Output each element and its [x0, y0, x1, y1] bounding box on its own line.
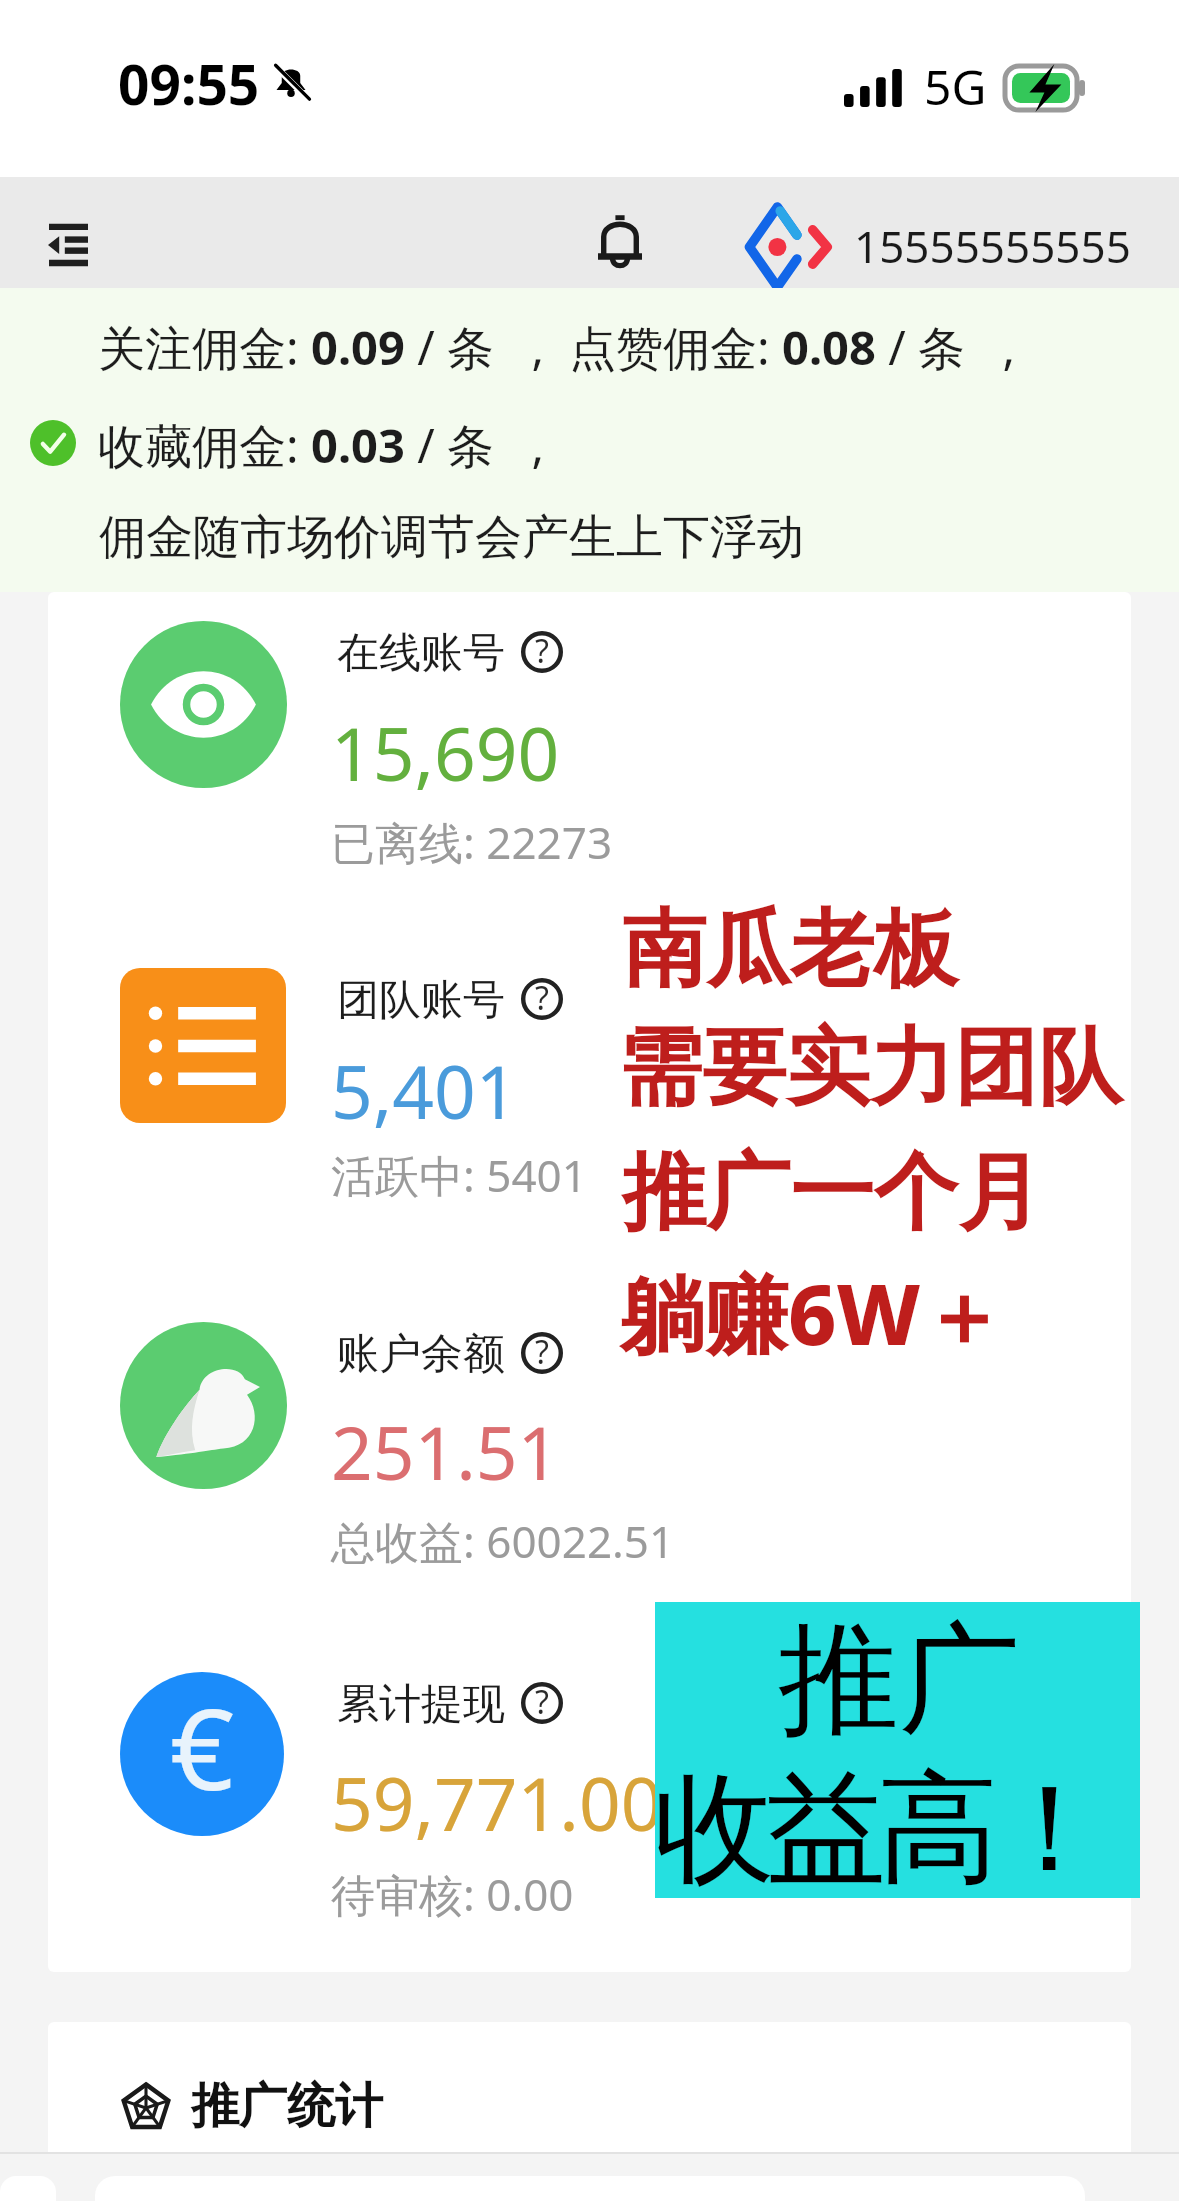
staticText: / 条 [405, 315, 507, 379]
staticText: 佣金随市场价调节会产生上下浮动 [99, 508, 804, 567]
staticText: 活跃中: 5401 [331, 1145, 587, 1205]
staticText: , [507, 315, 569, 379]
staticText: 5,401 [331, 1041, 518, 1140]
button[interactable]: € [48, 1644, 1131, 1985]
staticText: 251.51 [331, 1402, 560, 1501]
staticText: , [978, 315, 1016, 379]
staticText: 0.08 [782, 315, 876, 379]
staticText: 在线账号 [337, 627, 505, 680]
button[interactable]: Collapse menu [0, 177, 136, 288]
staticText: 南瓜老板 [622, 897, 958, 1003]
staticText: ? [535, 1330, 549, 1372]
staticText: 15,690 [331, 703, 560, 802]
button[interactable]: Notifications [576, 177, 664, 288]
staticText: 0.09 [311, 315, 405, 379]
staticText: ? [535, 1680, 549, 1722]
staticText: 5G [924, 54, 987, 119]
staticText: 点赞佣金: [569, 315, 782, 379]
staticText: 躺赚6W＋ [620, 1255, 1005, 1370]
staticText: 关注佣金: [98, 315, 311, 379]
staticText: € [170, 1672, 235, 1823]
button[interactable]: 团队账号 [48, 940, 1131, 1281]
staticText: 总收益: 60022.51 [331, 1511, 675, 1571]
staticText: 收藏佣金: [98, 413, 311, 477]
staticText: 累计提现 [337, 1678, 505, 1731]
staticText: 推广一个月 [622, 1140, 1042, 1246]
staticText: 09:55 [118, 46, 260, 121]
staticText: ? [535, 629, 549, 671]
staticText: 需要实力团队 [618, 1015, 1122, 1121]
button[interactable]: 推广统计 [48, 2022, 1131, 2153]
staticText: / 条 [405, 413, 507, 477]
staticText: 0.03 [311, 413, 405, 477]
staticText: ? [535, 976, 549, 1018]
staticText: 账户余额 [337, 1328, 505, 1381]
staticText: 团队账号 [337, 974, 505, 1027]
button[interactable]: 账户余额 [48, 1294, 1131, 1635]
staticText: 推广统计 [191, 2076, 383, 2136]
staticText: 收益高！ [658, 1753, 1106, 1905]
staticText: 推广 [778, 1604, 1020, 1756]
staticText: 59,771.00 [331, 1753, 663, 1852]
staticText: 已离线: 22273 [331, 812, 613, 872]
button[interactable]: 在线账号 [48, 593, 1131, 934]
staticText: / 条 [876, 315, 978, 379]
staticText: 15555555555 [854, 216, 1131, 276]
staticText: 待审核: 0.00 [331, 1864, 574, 1924]
staticText: , [507, 413, 545, 477]
button[interactable]: 15555555555 [746, 177, 1131, 288]
